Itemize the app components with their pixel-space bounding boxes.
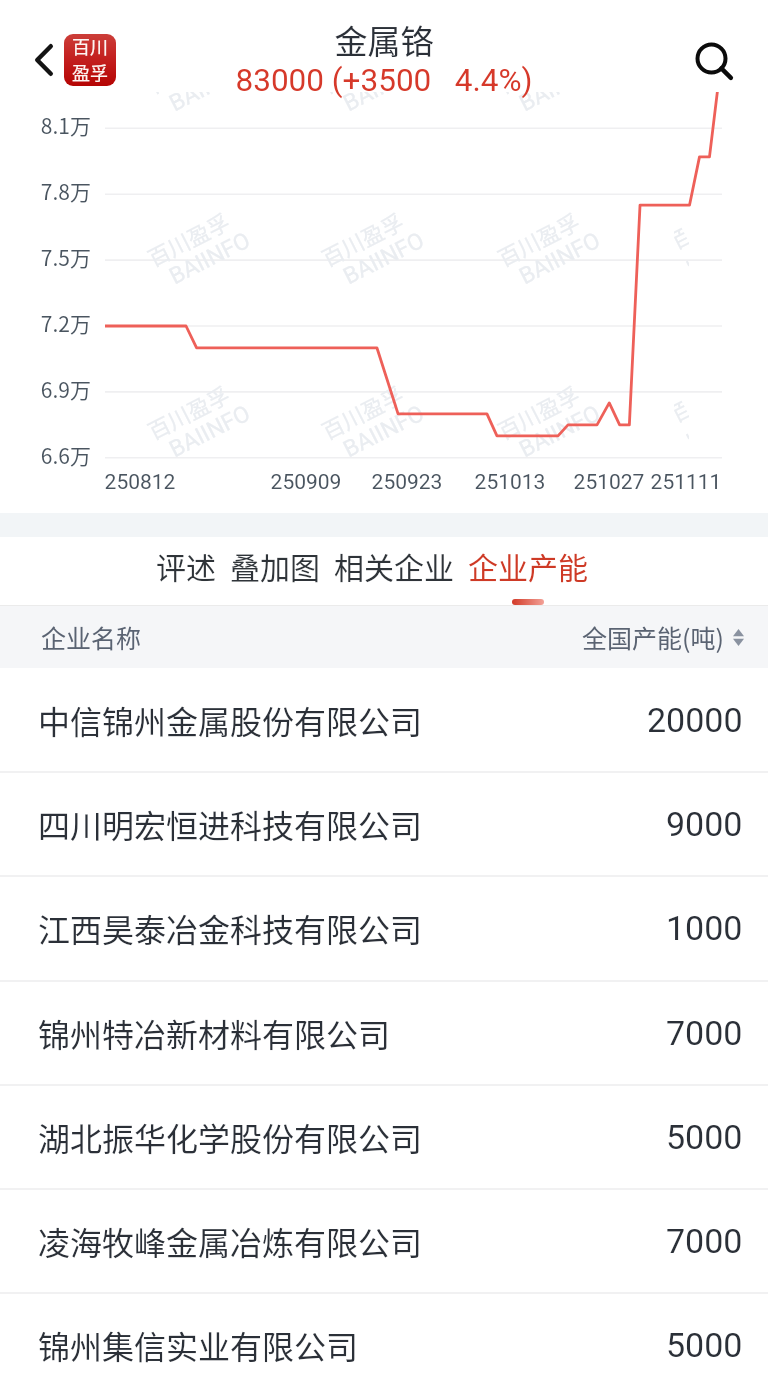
staticText: 百川盈孚 [491,92,585,100]
staticText: 锦州特冶新材料有限公司 [38,1010,391,1056]
staticText: BAIINFO [515,92,605,117]
staticText: 江西昊泰冶金科技有限公司 [38,905,423,951]
staticText: 叠加图 [230,544,320,587]
staticText: 百川盈孚 [491,204,585,273]
staticText: 中信锦州金属股份有限公司 [38,697,423,743]
staticText: 评述 [156,544,216,587]
staticText: 百川盈孚 [674,394,689,440]
staticText: 百川盈孚 [315,377,409,446]
staticText: 7000 [666,1013,743,1053]
staticText: 6.9万 [0,374,91,404]
staticText: 百川盈孚 [491,377,585,446]
staticText: 锦州集信实业有限公司 [38,1322,359,1368]
staticText: BAIINFO [165,92,255,117]
staticText: 250923 [357,470,457,495]
button[interactable]: 江西昊泰冶金科技有限公司 [0,876,768,980]
staticText: 251027 [559,470,659,495]
staticText: 83000 (+3500 4.4%) [0,62,768,99]
staticText: 251013 [460,470,560,495]
staticText: 企业产能 [468,544,588,587]
staticText: BAIINFO [339,227,429,290]
button[interactable]: 相关企业 [327,537,461,606]
button[interactable]: 叠加图 [223,537,327,606]
staticText: 7.5万 [0,242,91,272]
staticText: 百川盈孚 [315,92,409,100]
staticText: 盈孚 [72,59,108,85]
staticText: 9000 [666,804,743,844]
staticText: 相关企业 [334,544,454,587]
staticText: 20000 [647,700,743,740]
staticText: BAIINFO [515,227,605,290]
staticText: 百川盈孚 [315,204,409,273]
staticText: 251111 [636,470,736,495]
button[interactable]: Search [680,26,744,90]
staticText: BAIINFO [515,400,605,463]
button[interactable]: 湖北振华化学股份有限公司 [0,1085,768,1189]
button[interactable]: 锦州特冶新材料有限公司 [0,981,768,1085]
staticText: 四川明宏恒进科技有限公司 [38,801,423,847]
staticText: 百川盈孚 [674,221,689,267]
staticText: 百川盈孚 [141,204,235,273]
staticText: 企业名称 [41,619,142,655]
staticText: 金属铬 [0,16,768,64]
button[interactable]: 四川明宏恒进科技有限公司 [0,772,768,876]
staticText: 8.1万 [0,110,91,140]
staticText: 百川盈孚 [141,377,235,446]
staticText: 湖北振华化学股份有限公司 [38,1114,423,1160]
staticText: 1000 [666,908,743,948]
button[interactable]: 评述 [149,537,223,606]
button[interactable]: 企业产能 [461,537,595,606]
button[interactable]: 百川盈孚 [64,34,116,86]
staticText: BAIINFO [339,400,429,463]
staticText: 6.6万 [0,440,91,470]
staticText: BAIINFO [165,227,255,290]
staticText: 7.8万 [0,176,91,206]
button[interactable]: 凌海牧峰金属冶炼有限公司 [0,1189,768,1293]
staticText: 5000 [666,1325,743,1365]
staticText: BAIINFO [339,92,429,117]
staticText: 凌海牧峰金属冶炼有限公司 [38,1218,423,1264]
staticText: BAIINFO [165,400,255,463]
staticText: 百川 [72,34,108,59]
staticText: 250909 [256,470,356,495]
staticText: 百川盈孚 [141,92,235,100]
staticText: 7.2万 [0,308,91,338]
staticText: 7000 [666,1221,743,1261]
button[interactable]: 锦州集信实业有限公司 [0,1293,768,1388]
button[interactable]: 中信锦州金属股份有限公司 [0,668,768,772]
staticText: 全国产能(吨) [582,619,724,655]
staticText: 250812 [90,470,190,495]
staticText: 5000 [666,1117,743,1157]
button[interactable]: Back [20,36,68,84]
